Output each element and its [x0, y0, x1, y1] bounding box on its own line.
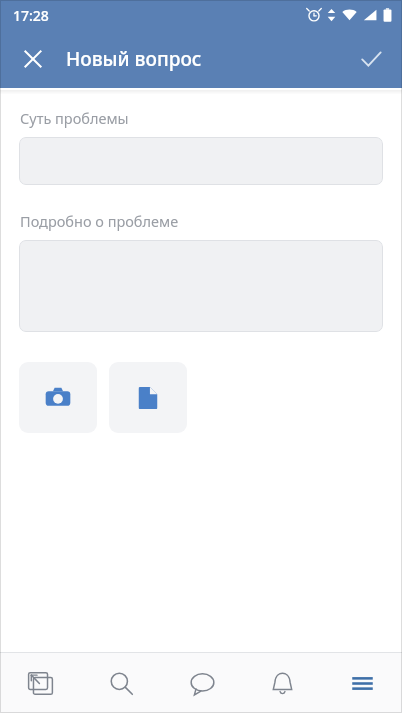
button[interactable]: Notifications: [242, 653, 322, 713]
button[interactable]: [19, 137, 383, 185]
staticText: Новый вопрос: [66, 46, 340, 72]
button[interactable]: Messages: [162, 653, 242, 713]
button[interactable]: Attach photo: [19, 362, 97, 433]
button[interactable]: News: [0, 653, 81, 713]
staticText: 17:28: [13, 6, 49, 25]
button[interactable]: Menu: [322, 653, 402, 713]
button[interactable]: Save: [340, 30, 402, 88]
button[interactable]: Attach file: [109, 362, 187, 433]
staticText: Подробно о проблеме: [20, 211, 179, 231]
button[interactable]: Close: [0, 30, 66, 88]
staticText: Суть проблемы: [20, 108, 129, 128]
button[interactable]: Search: [81, 653, 162, 713]
